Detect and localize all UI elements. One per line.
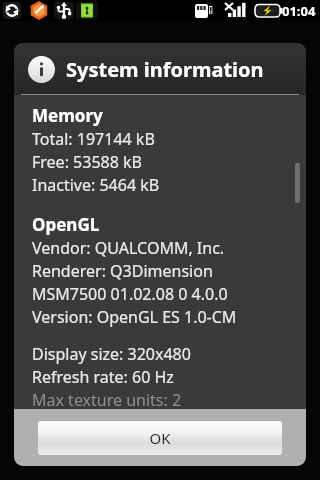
staticText: Exit <box>52 291 80 313</box>
staticText: MSM7500 01.02.08 0 4.0.0 <box>32 283 228 305</box>
staticText: Run full benchmark <box>52 45 209 68</box>
staticText: Run custom benchmark <box>52 103 232 125</box>
staticText: Renderer: Q3Dimension <box>32 260 213 282</box>
button[interactable]: OK <box>38 421 282 455</box>
staticText: 01:04 <box>282 2 316 20</box>
staticText: Memory <box>32 104 103 127</box>
staticText: Total: 197144 kB <box>32 128 155 150</box>
staticText: Free: 53588 kB <box>32 151 142 173</box>
staticText: Refresh rate: 60 Hz <box>32 366 174 388</box>
staticText: Vendor: QUALCOMM, Inc. <box>32 237 225 259</box>
staticText: Settings <box>52 227 113 249</box>
staticText: OpenGL <box>32 213 100 236</box>
staticText: Version: OpenGL ES 1.0-CM <box>32 306 237 328</box>
staticText: Inactive: 5464 kB <box>32 174 160 196</box>
staticText: Display size: 320x480 <box>32 343 191 365</box>
staticText: Max texture units: 2 <box>32 389 182 408</box>
staticText: System information <box>66 56 264 83</box>
staticText: OK <box>149 428 171 448</box>
staticText: System information <box>52 163 200 185</box>
